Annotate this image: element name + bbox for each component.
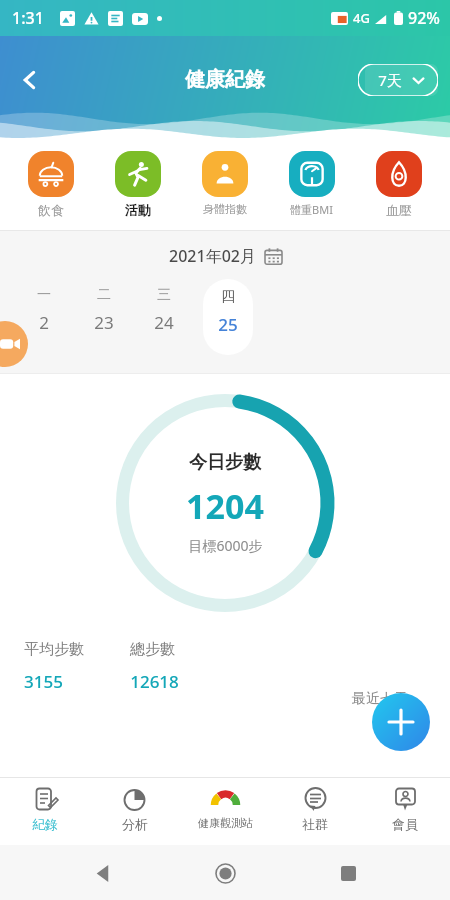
- staticText: 健康紀錄: [185, 67, 265, 92]
- button[interactable]: 健康觀測站: [180, 785, 270, 832]
- button[interactable]: 紀錄: [0, 785, 90, 834]
- staticText: 飲食: [38, 202, 64, 218]
- button[interactable]: Add record: [372, 693, 430, 751]
- staticText: 2021年02月: [169, 245, 256, 267]
- button[interactable]: Recents: [328, 853, 368, 893]
- staticText: 社群: [302, 816, 328, 832]
- button[interactable]: 2021年02月: [169, 245, 282, 267]
- staticText: 分析: [122, 816, 148, 832]
- staticText: 1204: [186, 483, 264, 529]
- staticText: 25: [218, 313, 238, 336]
- button[interactable]: 三: [142, 286, 186, 342]
- staticText: 3155: [24, 670, 63, 693]
- button[interactable]: 一: [22, 286, 66, 342]
- staticText: 會員: [392, 816, 418, 832]
- button[interactable]: 身體指數: [181, 149, 268, 218]
- button[interactable]: 二: [82, 286, 126, 342]
- staticText: 1:31: [12, 7, 44, 29]
- staticText: 24: [154, 311, 174, 334]
- staticText: 23: [94, 311, 114, 334]
- button[interactable]: 7天: [365, 64, 438, 96]
- staticText: 體重BMI: [290, 202, 333, 217]
- staticText: 今日步數: [189, 451, 261, 474]
- button[interactable]: Back: [8, 58, 52, 102]
- button[interactable]: Home: [205, 853, 245, 893]
- button[interactable]: 活動: [94, 149, 181, 220]
- button[interactable]: 四: [203, 279, 253, 355]
- staticText: 最近七天: [352, 690, 408, 708]
- button[interactable]: 會員: [360, 785, 450, 834]
- button[interactable]: 血壓: [355, 149, 442, 220]
- button[interactable]: Back: [83, 853, 123, 893]
- staticText: 身體指數: [203, 202, 247, 216]
- staticText: 三: [157, 286, 171, 304]
- staticText: 活動: [125, 202, 151, 218]
- staticText: 紀錄: [32, 816, 58, 832]
- button[interactable]: Video: [0, 321, 28, 367]
- staticText: 二: [97, 286, 111, 304]
- staticText: 4G: [353, 9, 370, 27]
- button[interactable]: 分析: [90, 785, 180, 834]
- staticText: 2: [39, 311, 49, 334]
- button[interactable]: 社群: [270, 785, 360, 834]
- staticText: 12618: [130, 670, 179, 693]
- staticText: 血壓: [386, 202, 412, 218]
- staticText: 健康觀測站: [198, 816, 253, 830]
- staticText: 四: [221, 288, 235, 306]
- staticText: 一: [37, 286, 51, 304]
- staticText: 平均步數: [24, 640, 84, 659]
- staticText: 總步數: [130, 640, 175, 659]
- staticText: 目標6000步: [188, 536, 263, 555]
- staticText: 7天: [378, 70, 402, 90]
- button[interactable]: 體重BMI: [268, 149, 355, 219]
- staticText: 92%: [408, 7, 440, 29]
- button[interactable]: 飲食: [8, 149, 94, 220]
